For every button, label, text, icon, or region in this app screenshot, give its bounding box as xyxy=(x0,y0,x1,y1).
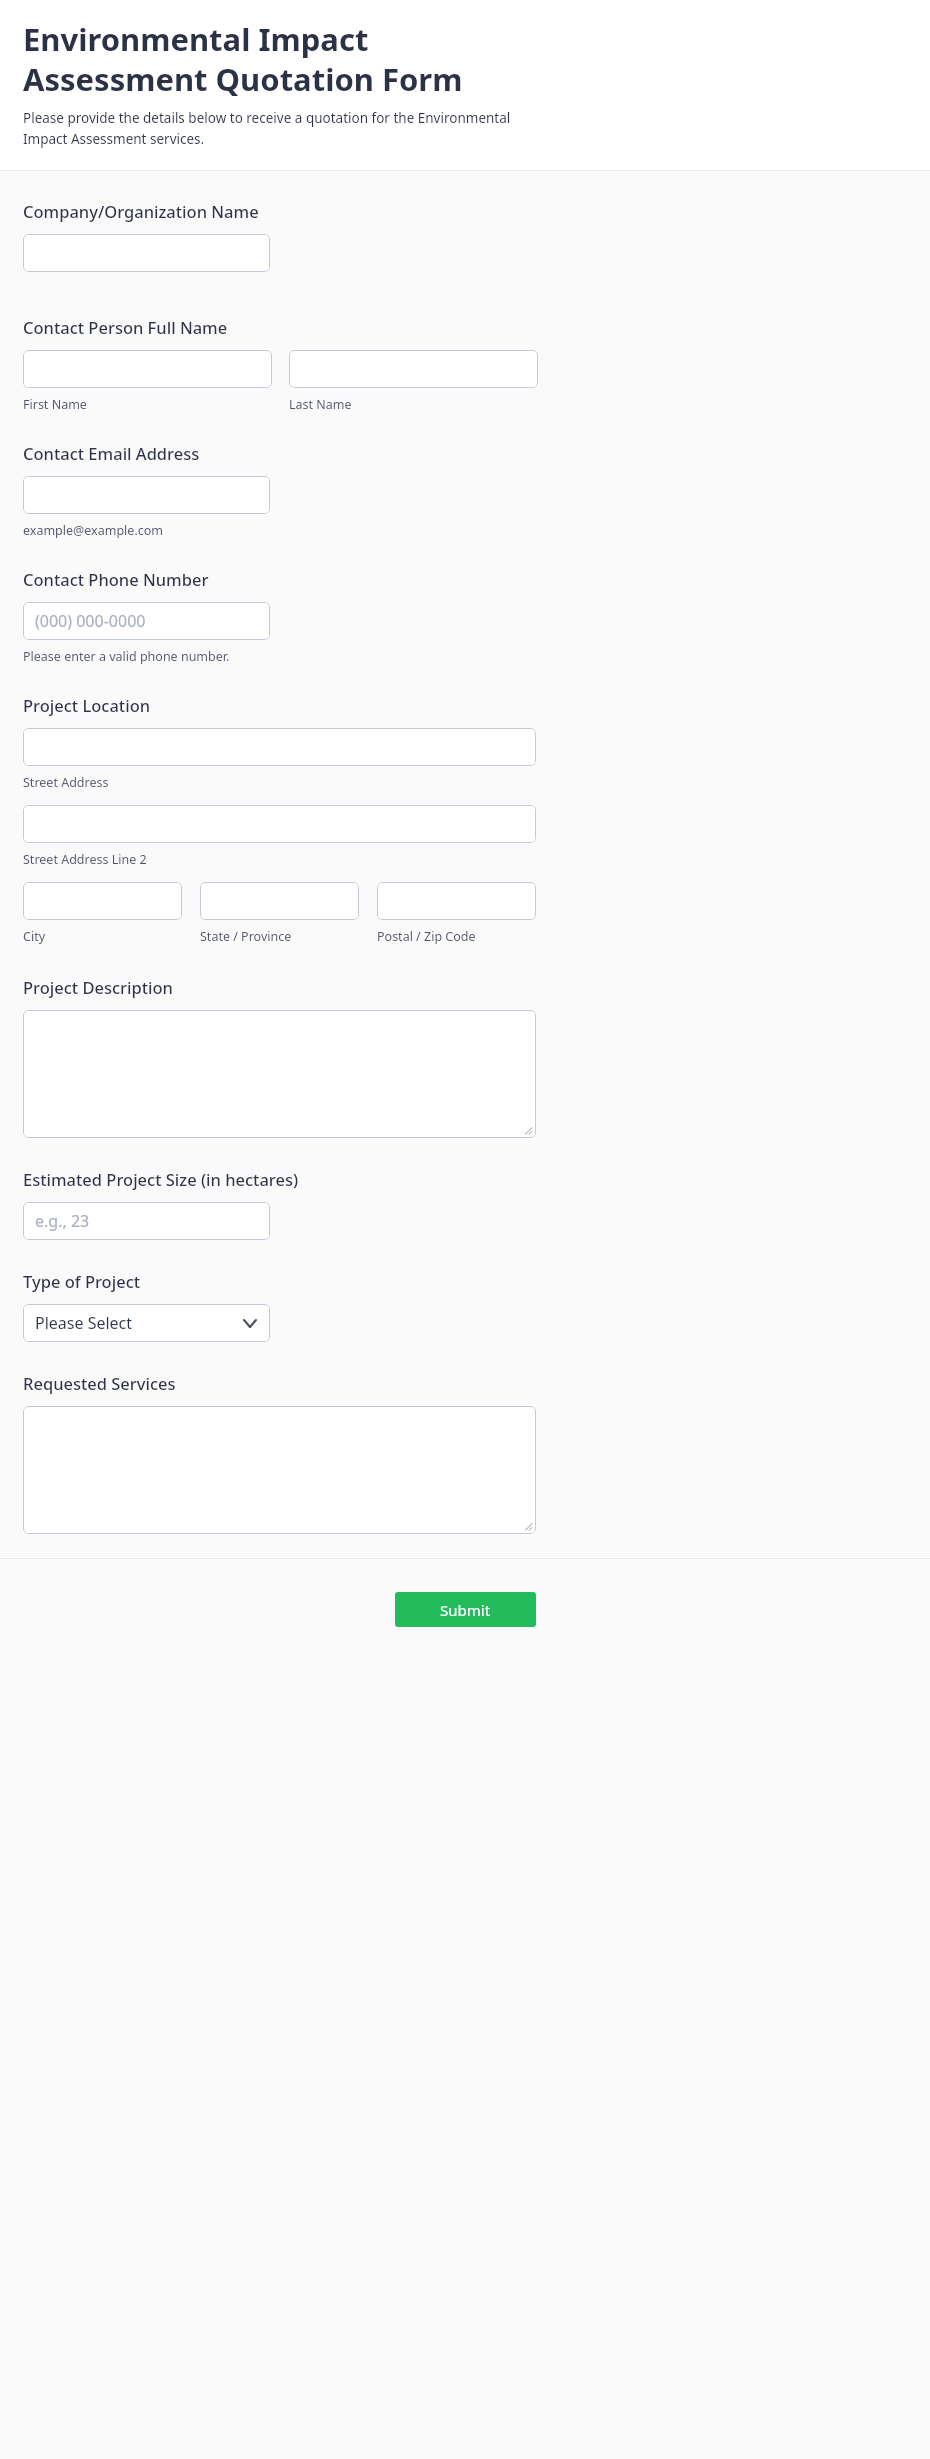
button[interactable]: Street Address xyxy=(23,728,536,766)
button[interactable]: Submit xyxy=(395,1592,536,1627)
staticText: Estimated Project Size (in hectares) xyxy=(23,1168,299,1190)
other: Open dropdown xyxy=(244,1320,256,1327)
staticText: e.g., 23 xyxy=(35,1210,90,1232)
staticText: Company/Organization Name xyxy=(23,200,259,222)
staticText: State / Province xyxy=(200,928,292,945)
button[interactable]: Last Name xyxy=(289,350,538,388)
button[interactable]: First Name xyxy=(23,350,272,388)
staticText: Please enter a valid phone number. xyxy=(23,648,230,665)
staticText: Contact Phone Number xyxy=(23,568,209,590)
button[interactable]: Postal / Zip Code xyxy=(377,882,536,920)
staticText: example@example.com xyxy=(23,522,163,539)
staticText: Project Description xyxy=(23,976,173,998)
button[interactable]: City xyxy=(23,882,182,920)
button[interactable]: Street Address Line 2 xyxy=(23,805,536,843)
staticText: Requested Services xyxy=(23,1372,176,1394)
staticText: Street Address xyxy=(23,774,109,791)
staticText: First Name xyxy=(23,396,87,413)
staticText: Contact Email Address xyxy=(23,442,200,464)
button[interactable]: Estimated Project Size xyxy=(23,1202,270,1240)
staticText: Type of Project xyxy=(23,1270,141,1292)
staticText: Please provide the details below to rece… xyxy=(23,109,543,148)
button[interactable]: Project Description xyxy=(23,1010,536,1138)
staticText: Street Address Line 2 xyxy=(23,851,147,868)
button[interactable]: Requested Services xyxy=(23,1406,536,1534)
button[interactable]: State / Province xyxy=(200,882,359,920)
staticText: City xyxy=(23,928,46,945)
button[interactable]: Please Select xyxy=(23,1304,270,1342)
staticText: Contact Person Full Name xyxy=(23,316,228,338)
staticText: Postal / Zip Code xyxy=(377,928,476,945)
staticText: (000) 000-0000 xyxy=(35,610,146,632)
staticText: Please Select xyxy=(35,1312,133,1334)
staticText: Environmental Impact Assessment Quotatio… xyxy=(23,18,483,100)
button[interactable]: Contact Phone Number xyxy=(23,602,270,640)
button[interactable]: Contact Email Address xyxy=(23,476,270,514)
button[interactable]: Company or Organization Name xyxy=(23,234,270,272)
staticText: Last Name xyxy=(289,396,352,413)
staticText: Submit xyxy=(440,1600,491,1620)
staticText: Project Location xyxy=(23,694,151,716)
